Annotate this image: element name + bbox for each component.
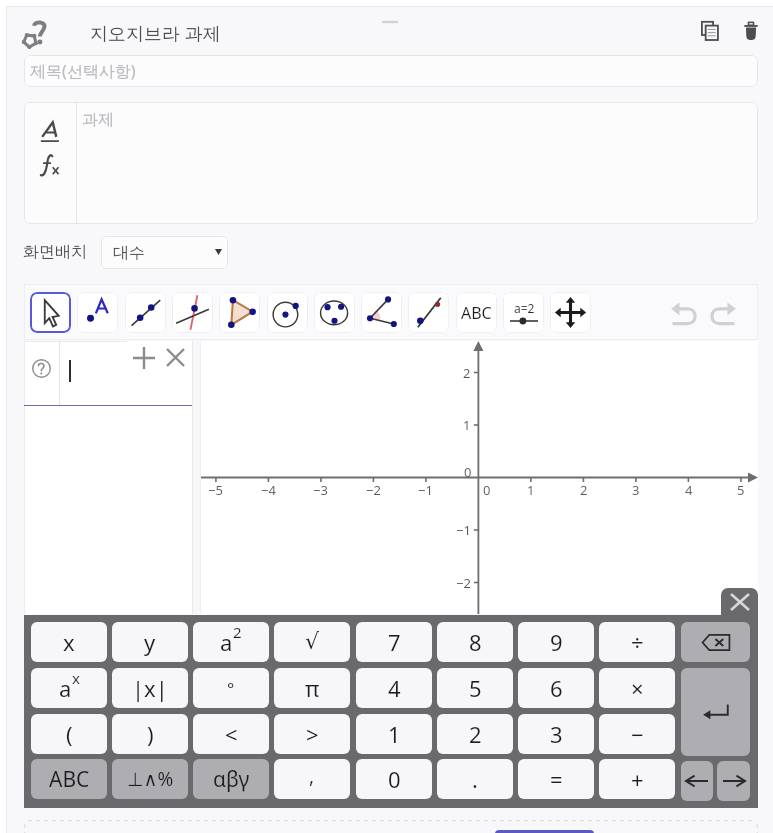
button[interactable]: Slider (503, 292, 544, 333)
button[interactable]: ) (112, 714, 188, 754)
staticText: 7 (388, 627, 401, 657)
staticText: 0 (388, 764, 401, 794)
staticText: 5 (469, 673, 482, 703)
staticText: −2 (366, 481, 381, 499)
staticText: . (472, 764, 478, 794)
button[interactable]: 4 (356, 668, 432, 708)
staticText: π (305, 673, 320, 703)
staticText: 4 (685, 481, 693, 499)
staticText: + (631, 764, 644, 794)
button[interactable]: + (599, 759, 675, 799)
button[interactable]: 7 (356, 622, 432, 662)
button[interactable]: Polygon (219, 292, 260, 333)
button[interactable]: 2 (437, 714, 513, 754)
button[interactable]: y (112, 622, 188, 662)
staticText: 2 (580, 481, 588, 499)
button[interactable]: Add (132, 346, 156, 370)
button[interactable]: < (193, 714, 269, 754)
staticText: 3 (550, 719, 563, 749)
staticText: ⊥∧% (127, 766, 174, 792)
staticText: ABC (461, 302, 492, 324)
staticText: ÷ (631, 627, 644, 657)
staticText: ° (227, 677, 235, 700)
button[interactable]: = (518, 759, 594, 799)
staticText: × (631, 673, 644, 703)
button[interactable]: Undo (668, 297, 700, 329)
button[interactable]: ( (31, 714, 107, 754)
button[interactable]: 8 (437, 622, 513, 662)
staticText: 2 (463, 364, 471, 382)
staticText: 0 (483, 481, 491, 499)
staticText: 0 (464, 463, 472, 481)
staticText: 3 (632, 481, 640, 499)
staticText: 9 (550, 627, 563, 657)
staticText: a (220, 627, 233, 657)
button[interactable]: − (599, 714, 675, 754)
button[interactable]: 대수 (101, 236, 228, 269)
button[interactable]: Input help (32, 359, 51, 378)
button[interactable]: x (31, 622, 107, 662)
button[interactable]: √ (274, 622, 350, 662)
staticText: 8 (469, 627, 482, 657)
button[interactable]: Circle (267, 292, 308, 333)
button[interactable]: Enter (681, 668, 750, 756)
staticText: 1 (463, 416, 471, 434)
button[interactable]: Point (77, 292, 118, 333)
button[interactable]: Backspace (681, 622, 750, 662)
staticText: ABC (49, 765, 90, 794)
button[interactable]: ABC (31, 759, 107, 799)
button[interactable]: a (31, 668, 107, 708)
button[interactable]: Line (125, 292, 166, 333)
button[interactable]: αβγ (193, 759, 269, 799)
button[interactable]: Move graphics view (550, 292, 591, 333)
button[interactable]: Close keyboard (721, 588, 758, 616)
staticText: |x| (132, 673, 168, 703)
button[interactable]: > (274, 714, 350, 754)
button[interactable]: Close (166, 348, 185, 367)
button[interactable]: GeoGebra help (18, 16, 50, 52)
button[interactable]: Conic (314, 292, 355, 333)
button[interactable]: Text style (40, 121, 62, 143)
button[interactable]: Left (681, 761, 713, 801)
staticText: 대수 (113, 243, 145, 263)
button[interactable]: ° (193, 668, 269, 708)
button[interactable]: Redo (707, 297, 739, 329)
button[interactable]: 0 (356, 759, 432, 799)
staticText: −1 (456, 521, 471, 539)
button[interactable]: Angle (361, 292, 402, 333)
staticText: ( (66, 719, 73, 749)
button[interactable]: Reflect (408, 292, 449, 333)
button[interactable]: Copy (701, 21, 719, 41)
staticText: 제목(선택사항) (30, 60, 136, 82)
button[interactable]: |x| (112, 668, 188, 708)
button[interactable]: Save (495, 830, 594, 833)
button[interactable]: 9 (518, 622, 594, 662)
staticText: > (306, 719, 319, 749)
button[interactable]: Formula (40, 154, 62, 176)
button[interactable]: Perpendicular line (172, 292, 213, 333)
button[interactable]: 3 (518, 714, 594, 754)
staticText: αβγ (213, 765, 250, 794)
button[interactable]: 제목(선택사항) (24, 55, 758, 87)
button[interactable]: Right (717, 761, 750, 801)
staticText: 화면배치 (23, 242, 87, 262)
button[interactable]: 5 (437, 668, 513, 708)
button[interactable]: 과제 (77, 102, 758, 224)
staticText: −2 (456, 574, 471, 592)
staticText: a=2 (514, 300, 535, 316)
button[interactable]: 6 (518, 668, 594, 708)
button[interactable]: ⊥∧% (112, 759, 188, 799)
button[interactable]: Text (456, 292, 497, 333)
button[interactable]: ÷ (599, 622, 675, 662)
button[interactable]: Move (30, 292, 71, 333)
button[interactable]: 1 (356, 714, 432, 754)
button[interactable]: × (599, 668, 675, 708)
staticText: 5 (737, 481, 745, 499)
button[interactable]: , (274, 759, 350, 799)
button[interactable]: a (193, 622, 269, 662)
button[interactable]: . (437, 759, 513, 799)
button[interactable]: Delete (744, 22, 758, 40)
staticText: 2 (233, 622, 242, 642)
button[interactable]: π (274, 668, 350, 708)
staticText: 1 (527, 481, 535, 499)
